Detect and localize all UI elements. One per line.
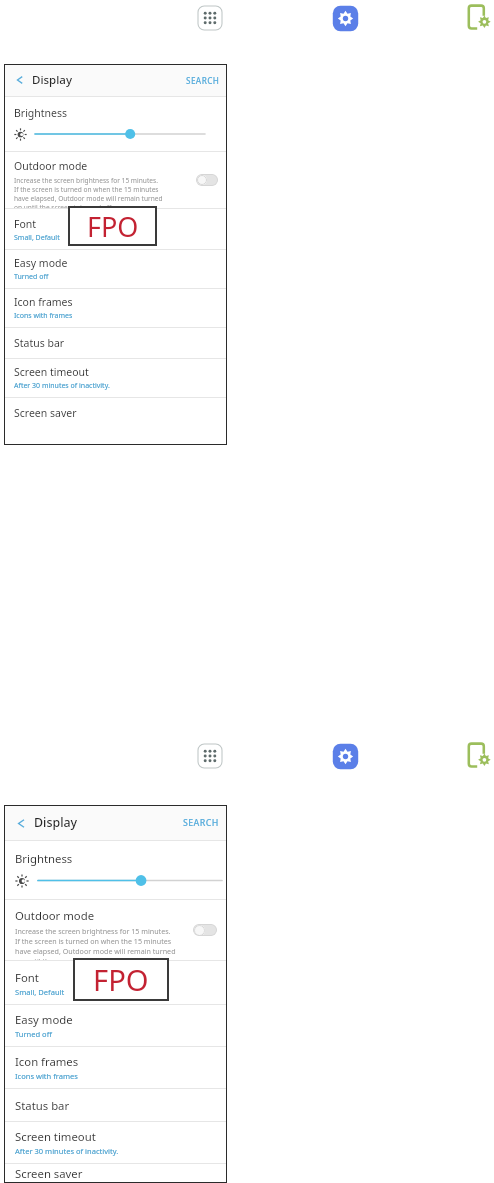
button[interactable]: Screen timeout: [4, 1122, 227, 1163]
button[interactable]: Brightness: [4, 97, 227, 151]
staticText: on until the screen is turned off.: [15, 956, 122, 960]
staticText: on until the screen is turned off.: [14, 203, 113, 208]
staticText: Display: [34, 814, 78, 831]
button[interactable]: Settings: [330, 741, 361, 772]
staticText: Font: [14, 217, 37, 231]
button[interactable]: Status bar: [4, 1089, 227, 1121]
button[interactable]: [35, 127, 205, 141]
button[interactable]: Icon frames: [4, 289, 227, 327]
staticText: Icons with frames: [14, 311, 73, 321]
staticText: Screen timeout: [14, 365, 89, 379]
staticText: Display: [32, 72, 72, 88]
staticText: SEARCH: [183, 817, 219, 829]
button[interactable]: Settings: [330, 3, 361, 34]
button[interactable]: Status bar: [4, 328, 227, 358]
button[interactable]: Screen saver: [4, 398, 227, 428]
button[interactable]: Back: [10, 812, 32, 834]
button[interactable]: Display settings: [464, 740, 494, 770]
staticText: Screen saver: [15, 1166, 83, 1181]
button[interactable]: Font: [4, 961, 227, 1004]
staticText: Brightness: [15, 851, 73, 866]
staticText: Status bar: [14, 336, 65, 350]
staticText: Small, Default: [15, 987, 65, 997]
staticText: If the screen is turned on when the 15 m…: [14, 185, 159, 194]
button[interactable]: Icon frames: [4, 1047, 227, 1088]
button[interactable]: Screen saver: [4, 1164, 227, 1183]
button[interactable]: Font: [4, 209, 227, 249]
button[interactable]: Apps: [195, 3, 225, 33]
staticText: After 30 minutes of inactivity.: [15, 1146, 119, 1156]
button[interactable]: Back: [4, 64, 227, 96]
button[interactable]: Outdoor mode toggle: [193, 924, 217, 936]
button[interactable]: [38, 873, 222, 888]
staticText: Font: [15, 970, 39, 985]
staticText: Screen timeout: [15, 1129, 96, 1144]
staticText: Small, Default: [14, 233, 60, 243]
button[interactable]: Display settings: [464, 2, 494, 32]
staticText: FPO: [87, 208, 139, 245]
button[interactable]: SEARCH: [183, 817, 219, 829]
staticText: Brightness: [14, 106, 68, 120]
button[interactable]: Easy mode: [4, 250, 227, 288]
staticText: FPO: [93, 960, 149, 1000]
button[interactable]: SEARCH: [186, 75, 220, 86]
staticText: Status bar: [15, 1098, 70, 1113]
staticText: Icon frames: [15, 1054, 79, 1069]
staticText: Turned off: [14, 272, 49, 282]
button[interactable]: Back: [4, 805, 227, 840]
staticText: have elapsed, Outdoor mode will remain t…: [15, 946, 176, 956]
staticText: Easy mode: [15, 1012, 73, 1027]
staticText: have elapsed, Outdoor mode will remain t…: [14, 194, 163, 203]
staticText: After 30 minutes of inactivity.: [14, 381, 110, 391]
button[interactable]: Outdoor mode: [4, 152, 227, 208]
button[interactable]: Apps: [195, 741, 225, 771]
button[interactable]: Back: [10, 70, 30, 90]
staticText: Increase the screen brightness for 15 mi…: [15, 926, 171, 936]
staticText: Icon frames: [14, 295, 73, 309]
staticText: SEARCH: [186, 75, 220, 86]
staticText: Easy mode: [14, 256, 68, 270]
staticText: Outdoor mode: [15, 908, 95, 923]
button[interactable]: Brightness: [4, 841, 227, 899]
button[interactable]: Easy mode: [4, 1005, 227, 1046]
staticText: Icons with frames: [15, 1071, 78, 1081]
staticText: Screen saver: [14, 406, 77, 420]
staticText: Outdoor mode: [14, 159, 88, 173]
staticText: Increase the screen brightness for 15 mi…: [14, 176, 158, 185]
button[interactable]: Screen timeout: [4, 359, 227, 397]
button[interactable]: Outdoor mode: [4, 900, 227, 960]
staticText: If the screen is turned on when the 15 m…: [15, 936, 172, 946]
button[interactable]: Outdoor mode toggle: [196, 174, 218, 186]
staticText: Turned off: [15, 1029, 52, 1039]
